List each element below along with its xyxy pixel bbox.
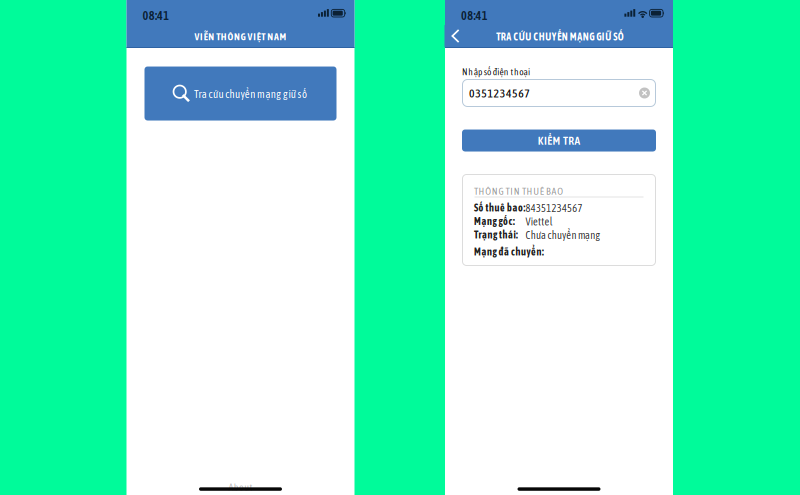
staticText: Trạng thái: bbox=[474, 229, 518, 241]
staticText: Số thuê bao: bbox=[474, 202, 525, 214]
staticText: 08:41 bbox=[461, 8, 488, 23]
button[interactable]: Tra cứu chuyển mạng giữ số bbox=[144, 66, 336, 120]
button[interactable]: KIỂM TRA bbox=[462, 129, 656, 151]
staticText: Tra cứu chuyển mạng giữ số bbox=[194, 88, 307, 100]
staticText: Chưa chuyển mạng bbox=[525, 229, 599, 241]
staticText: Mạng đã chuyển: bbox=[474, 246, 544, 258]
staticText: 84351234567 bbox=[525, 202, 582, 214]
button[interactable]: About bbox=[220, 481, 260, 493]
button[interactable]: Back bbox=[444, 25, 466, 47]
staticText: 08:41 bbox=[142, 8, 169, 23]
button[interactable]: Clear text bbox=[639, 87, 650, 98]
staticText: THÔNG TIN THUÊ BAO bbox=[474, 185, 563, 197]
staticText: Viettel bbox=[525, 216, 553, 228]
staticText: About bbox=[229, 481, 252, 493]
staticText: TRA CỨU CHUYỂN MẠNG GIỮ SỐ bbox=[496, 31, 624, 43]
staticText: 0351234567 bbox=[469, 86, 530, 100]
staticText: VIỄN THÔNG VIỆT NAM bbox=[195, 31, 286, 42]
staticText: Mạng gốc: bbox=[474, 215, 515, 227]
staticText: KIỂM TRA bbox=[538, 134, 580, 147]
staticText: Nhập số điện thoại bbox=[462, 66, 530, 77]
